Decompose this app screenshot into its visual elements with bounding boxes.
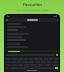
button[interactable]: Enter (55, 67, 58, 69)
staticText: a tap away (26, 13, 38, 16)
button[interactable]: Back (5, 18, 59, 22)
staticText: Favourites (23, 2, 42, 7)
staticText: Your personal collection, always (16, 9, 49, 12)
button[interactable] (7, 50, 57, 52)
